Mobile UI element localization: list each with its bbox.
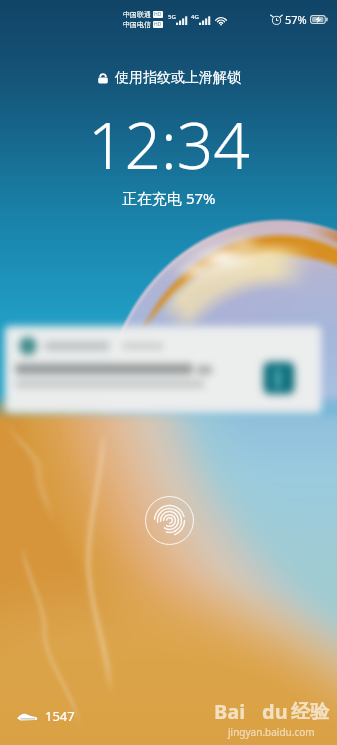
staticText: 中国联通 bbox=[123, 10, 151, 19]
staticText: 使用指纹或上滑解锁 bbox=[115, 69, 241, 87]
button[interactable]: Fingerprint unlock bbox=[144, 495, 195, 546]
staticText: HD bbox=[154, 11, 162, 18]
staticText: jingyan.baidu.com bbox=[228, 725, 315, 739]
staticText: HD bbox=[154, 21, 162, 28]
button[interactable] bbox=[0, 314, 331, 424]
staticText: 正在充电 57% bbox=[122, 188, 216, 208]
staticText: 1547 bbox=[45, 707, 75, 725]
staticText: 5G bbox=[168, 13, 176, 21]
staticText: 12:34 bbox=[88, 101, 250, 188]
staticText: du bbox=[262, 698, 288, 725]
staticText: 经验 bbox=[291, 700, 329, 724]
staticText: Bai bbox=[214, 698, 246, 725]
staticText: 57% bbox=[285, 12, 307, 27]
button[interactable]: 1547 bbox=[16, 707, 75, 725]
staticText: 中国电信 bbox=[123, 20, 151, 29]
staticText: 4G bbox=[191, 13, 199, 21]
